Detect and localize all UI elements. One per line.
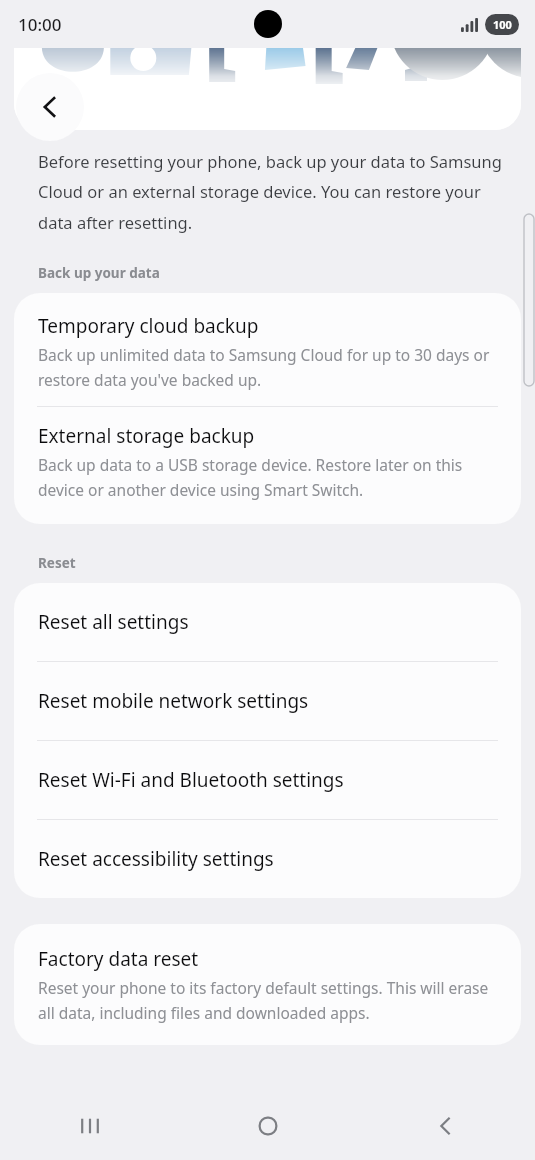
button[interactable]: Back [357, 1092, 535, 1160]
staticText: Reset mobile network settings [38, 688, 309, 714]
button[interactable]: External storage backup [14, 407, 521, 516]
staticText: Back up unlimited data to Samsung Cloud … [38, 344, 501, 390]
button[interactable]: Factory data reset [14, 930, 521, 1039]
staticText: Back up data to a USB storage device. Re… [38, 454, 501, 500]
staticText: 10:00 [18, 13, 62, 36]
staticText: Temporary cloud backup [38, 313, 259, 339]
staticText: Factory data reset [38, 946, 199, 972]
staticText: Back up your data [38, 264, 160, 282]
button[interactable]: Reset Wi-Fi and Bluetooth settings [14, 741, 521, 819]
staticText: 100 [493, 17, 512, 32]
button[interactable]: Home [179, 1092, 357, 1160]
staticText: External storage backup [38, 423, 255, 449]
button[interactable]: Back [16, 73, 84, 141]
staticText: Reset accessibility settings [38, 846, 274, 872]
button[interactable]: Temporary cloud backup [14, 297, 521, 406]
button[interactable]: Reset all settings [14, 583, 521, 661]
staticText: Reset all settings [38, 609, 189, 635]
staticText: Reset [38, 554, 76, 572]
staticText: Reset your phone to its factory default … [38, 977, 501, 1023]
button[interactable]: Recent apps [0, 1092, 179, 1160]
staticText: Reset Wi-Fi and Bluetooth settings [38, 767, 344, 793]
button[interactable]: Reset accessibility settings [14, 820, 521, 898]
staticText: Before resetting your phone, back up you… [38, 150, 505, 234]
button[interactable]: Reset mobile network settings [14, 662, 521, 740]
